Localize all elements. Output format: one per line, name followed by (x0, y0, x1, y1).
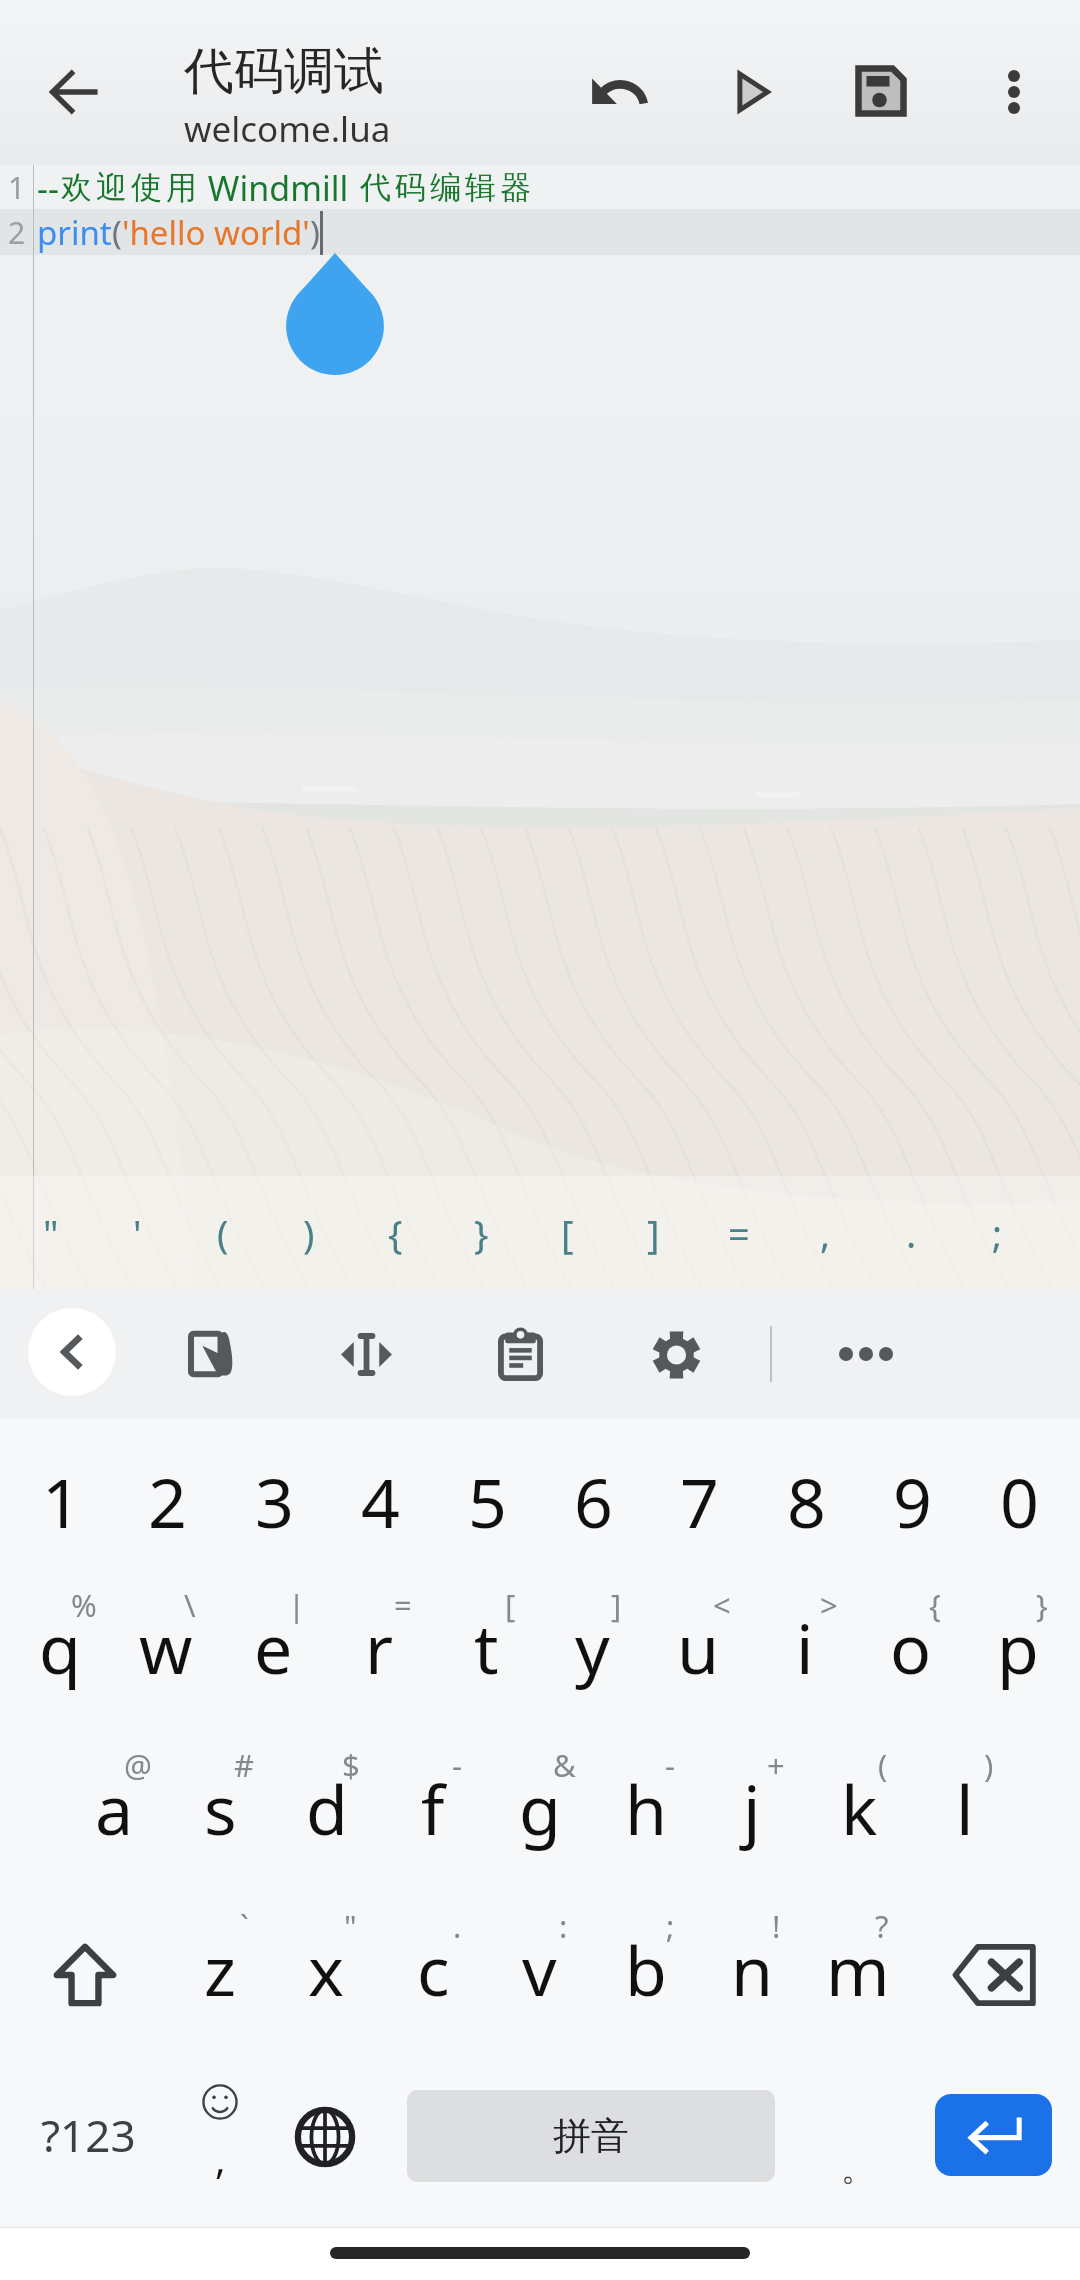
staticText: ( (878, 1744, 888, 1786)
button[interactable]: w (113, 1577, 219, 1717)
button[interactable]: d (274, 1738, 380, 1878)
button[interactable]: y (539, 1577, 645, 1717)
button[interactable]: Move cursor (321, 1309, 411, 1399)
button[interactable]: More options (969, 47, 1059, 137)
button[interactable]: c (380, 1899, 486, 2039)
button[interactable]: , (185, 2128, 255, 2188)
staticText: - (665, 1744, 675, 1786)
button[interactable]: { (352, 1176, 438, 1289)
button[interactable]: Enter (935, 2094, 1052, 2176)
button[interactable]: Shift (30, 1915, 140, 2035)
button[interactable]: e (220, 1577, 326, 1717)
button[interactable]: " (8, 1176, 94, 1289)
button[interactable]: a (61, 1738, 167, 1878)
staticText: ) (984, 1744, 994, 1786)
button[interactable]: 9 (859, 1431, 965, 1571)
staticText: 拼音 (553, 2112, 629, 2160)
staticText: 2 (8, 212, 26, 253)
button[interactable]: m (805, 1899, 911, 2039)
button[interactable]: More (821, 1309, 911, 1399)
button[interactable]: 3 (221, 1431, 327, 1571)
button[interactable]: 4 (327, 1431, 433, 1571)
staticText: z (204, 1923, 236, 2016)
button[interactable]: v (486, 1899, 592, 2039)
staticText: a (95, 1762, 134, 1855)
staticText: n (731, 1923, 774, 2016)
button[interactable]: 7 (646, 1431, 752, 1571)
button[interactable]: . (868, 1176, 954, 1289)
staticText: h (625, 1762, 668, 1855)
button[interactable]: ; (954, 1176, 1040, 1289)
button[interactable]: ' (94, 1176, 180, 1289)
button[interactable]: , (782, 1176, 868, 1289)
staticText: , (820, 1207, 831, 1259)
button[interactable]: 8 (753, 1431, 859, 1571)
button[interactable]: q (7, 1577, 113, 1717)
button[interactable]: r (326, 1577, 432, 1717)
button[interactable]: Settings (631, 1310, 721, 1400)
button[interactable]: n (699, 1899, 805, 2039)
staticText: m (826, 1923, 890, 2016)
button[interactable]: f (380, 1738, 486, 1878)
button[interactable]: u (645, 1577, 751, 1717)
button[interactable]: ( (180, 1176, 266, 1289)
button[interactable]: = (696, 1176, 782, 1289)
button[interactable]: Run (708, 47, 798, 137)
button[interactable]: ?123 (13, 2080, 163, 2190)
button[interactable]: 2 (114, 1431, 220, 1571)
staticText: b (625, 1923, 667, 2016)
staticText: ; (992, 1207, 1003, 1259)
button[interactable]: l (912, 1738, 1018, 1878)
button[interactable]: 0 (966, 1431, 1072, 1571)
staticText: 9 (893, 1455, 932, 1548)
button[interactable]: Undo (573, 46, 663, 136)
button[interactable]: 。 (818, 2138, 898, 2198)
staticText: 0 (1000, 1455, 1039, 1548)
button[interactable]: k (806, 1738, 912, 1878)
staticText: l (956, 1762, 974, 1855)
button[interactable]: 5 (434, 1431, 540, 1571)
button[interactable]: o (858, 1577, 964, 1717)
button[interactable]: Clipboard (475, 1309, 565, 1399)
button[interactable]: 1 (8, 1431, 114, 1571)
button[interactable]: j (699, 1738, 805, 1878)
staticText: | (288, 1584, 306, 1626)
button[interactable]: 6 (540, 1431, 646, 1571)
button[interactable]: Collapse keyboard (28, 1308, 116, 1396)
staticText: } (474, 1207, 489, 1259)
staticText: 代码编辑器 (358, 168, 533, 207)
button[interactable]: h (593, 1738, 699, 1878)
staticText: ) (303, 1207, 315, 1259)
staticText: w (139, 1601, 193, 1694)
button[interactable]: [ (524, 1176, 610, 1289)
button[interactable]: z (167, 1899, 273, 2039)
button[interactable]: t (433, 1577, 539, 1717)
staticText: : (559, 1905, 568, 1947)
staticText: ?123 (41, 2105, 136, 2165)
button[interactable]: } (438, 1176, 524, 1289)
button[interactable]: ] (610, 1176, 696, 1289)
button[interactable]: Emoji (185, 2067, 255, 2137)
button[interactable]: 拼音 (407, 2090, 775, 2182)
button[interactable]: i (752, 1577, 858, 1717)
button[interactable]: Handwriting (167, 1309, 257, 1399)
button[interactable]: Save (836, 46, 926, 136)
staticText: ) (310, 210, 320, 255)
button[interactable]: Change keyboard (270, 2082, 380, 2192)
staticText: v (522, 1923, 557, 2016)
button[interactable]: g (487, 1738, 593, 1878)
staticText: " (43, 1207, 59, 1259)
staticText: 代码调试 (184, 40, 384, 103)
button[interactable]: Backspace (935, 1915, 1055, 2035)
staticText: } (1036, 1584, 1048, 1626)
button[interactable]: Back (30, 47, 120, 137)
button[interactable]: b (593, 1899, 699, 2039)
staticText: ] (611, 1584, 622, 1626)
button[interactable]: p (965, 1577, 1071, 1717)
staticText: 欢迎使用 (59, 168, 199, 207)
button[interactable]: ) (266, 1176, 352, 1289)
button[interactable]: s (167, 1738, 273, 1878)
button[interactable]: x (273, 1899, 379, 2039)
staticText: [ (561, 1207, 574, 1259)
